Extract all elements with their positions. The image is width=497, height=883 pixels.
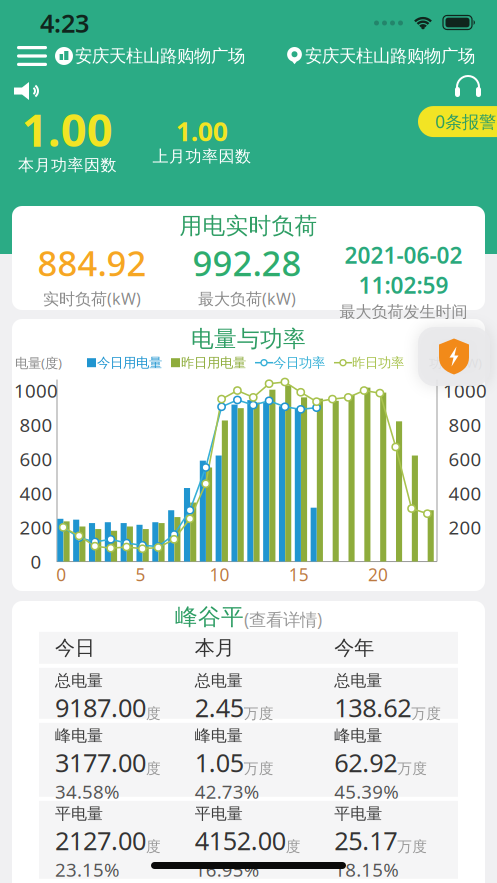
staticText: 18.15%: [334, 857, 399, 882]
staticText: 度: [146, 705, 161, 723]
staticText: 200: [19, 515, 52, 540]
staticText: 最大负荷发生时间: [339, 302, 467, 322]
staticText: 884.92: [37, 240, 146, 286]
staticText: 2127.00: [55, 823, 146, 857]
staticText: 1.00: [22, 99, 113, 159]
staticText: 安庆天柱山路购物广场: [305, 45, 475, 67]
staticText: 度: [286, 838, 301, 856]
staticText: 600: [448, 447, 481, 471]
staticText: 25.17: [334, 823, 397, 857]
staticText: 2021-06-02: [344, 240, 462, 270]
staticText: 400: [19, 481, 52, 506]
staticText: 平电量: [195, 804, 243, 823]
staticText: 9187.00: [55, 690, 146, 724]
staticText: 今日用电量: [97, 354, 162, 371]
staticText: 今日: [55, 636, 95, 660]
staticText: 62.92: [334, 745, 397, 779]
staticText: 23.15%: [55, 857, 120, 882]
staticText: 万度: [244, 760, 274, 778]
button[interactable]: 安庆天柱山路购物广场: [286, 45, 497, 67]
staticText: 万度: [411, 705, 441, 723]
staticText: 功率(kW): [429, 354, 482, 371]
staticText: 45.39%: [334, 779, 399, 804]
staticText: 10: [210, 563, 230, 586]
button[interactable]: Customer service: [455, 79, 497, 103]
staticText: 1.05: [195, 745, 244, 779]
button[interactable]: 0条报警: [418, 106, 497, 137]
button[interactable]: Broadcast: [0, 82, 40, 100]
staticText: 峰谷平: [175, 603, 244, 631]
staticText: 200: [448, 515, 481, 540]
staticText: 42.73%: [195, 779, 260, 804]
staticText: 平电量: [55, 804, 103, 823]
staticText: 度: [146, 760, 161, 778]
button[interactable]: (查看详情): [244, 608, 322, 631]
staticText: 总电量: [334, 671, 382, 690]
staticText: 万度: [397, 838, 427, 856]
staticText: 1000: [443, 378, 487, 403]
staticText: 138.62: [334, 690, 411, 724]
staticText: 1000: [14, 378, 58, 403]
staticText: 11:02:59: [358, 270, 448, 300]
staticText: 用电实时负荷: [179, 212, 317, 240]
staticText: 本月: [195, 636, 235, 660]
staticText: 峰电量: [55, 726, 103, 745]
button[interactable]: Power guard: [418, 327, 490, 386]
staticText: 昨日功率: [352, 354, 404, 371]
staticText: 上月功率因数: [152, 146, 251, 166]
button[interactable]: 安庆天柱山路购物广场: [47, 45, 245, 67]
staticText: 800: [448, 412, 481, 437]
staticText: 实时负荷(kW): [43, 288, 141, 309]
staticText: 总电量: [195, 671, 243, 690]
staticText: 600: [19, 447, 52, 471]
staticText: 万度: [397, 760, 427, 778]
staticText: 34.58%: [55, 779, 120, 804]
staticText: 3177.00: [55, 745, 146, 779]
staticText: 最大负荷(kW): [198, 288, 296, 309]
staticText: 2.45: [195, 690, 244, 724]
staticText: 总电量: [55, 671, 103, 690]
staticText: 度: [146, 838, 161, 856]
staticText: 0条报警: [435, 110, 496, 133]
staticText: 400: [448, 481, 481, 506]
staticText: 992.28: [192, 240, 301, 286]
staticText: 昨日用电量: [181, 354, 246, 371]
staticText: 5: [135, 563, 145, 586]
staticText: 1.00: [176, 113, 228, 148]
staticText: 4:23: [40, 6, 89, 40]
staticText: 万度: [244, 705, 274, 723]
staticText: (查看详情): [244, 608, 322, 631]
staticText: 电量与功率: [191, 325, 306, 353]
button[interactable]: Menu: [0, 46, 47, 66]
staticText: 今日功率: [273, 354, 325, 371]
staticText: 平电量: [334, 804, 382, 823]
staticText: 0: [56, 563, 66, 586]
staticText: 20: [368, 563, 388, 586]
staticText: 电量(度): [15, 354, 62, 371]
staticText: 4152.00: [195, 823, 286, 857]
staticText: 峰电量: [195, 726, 243, 745]
staticText: 16.95%: [195, 857, 260, 882]
staticText: 安庆天柱山路购物广场: [75, 45, 245, 67]
staticText: 15: [289, 563, 309, 586]
staticText: 本月功率因数: [18, 155, 116, 175]
staticText: 800: [19, 412, 52, 437]
staticText: 今年: [334, 636, 374, 660]
staticText: 峰电量: [334, 726, 382, 745]
staticText: 0: [30, 549, 41, 574]
